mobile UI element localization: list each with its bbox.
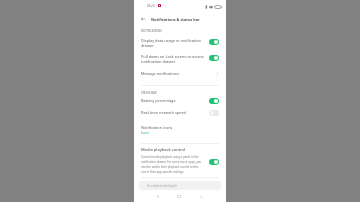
button[interactable]: Home [168, 191, 190, 202]
button[interactable] [209, 39, 219, 45]
staticText: Real-time network speed [141, 110, 186, 115]
button[interactable] [209, 55, 219, 61]
staticText: Notifications & status bar [151, 17, 200, 22]
staticText: NOTIFICATIONS [141, 29, 162, 33]
staticText: Media playback control [141, 147, 186, 152]
staticText: Manage notifications [141, 71, 180, 76]
other: Manage notifications [215, 71, 220, 76]
staticText: Display data usage in notification drawe… [141, 38, 205, 48]
button[interactable] [209, 98, 219, 104]
button[interactable]: Share [190, 191, 212, 202]
staticText: Pull down on Lock screen to access notif… [141, 54, 205, 64]
button[interactable]: Recents [147, 191, 168, 202]
button[interactable]: Back [140, 16, 146, 22]
staticText: Control media playback using a panel in … [141, 155, 202, 174]
button[interactable]: You might be looking for [139, 181, 221, 190]
staticText: 06:20 [147, 4, 155, 8]
staticText: Notification icons [141, 125, 173, 130]
button[interactable] [209, 159, 219, 165]
staticText: Icons [141, 131, 150, 135]
staticText: STATUS BAR [141, 91, 157, 95]
staticText: Battery percentage [141, 98, 176, 103]
staticText: You might be looking for [147, 184, 178, 188]
button[interactable] [209, 110, 219, 116]
